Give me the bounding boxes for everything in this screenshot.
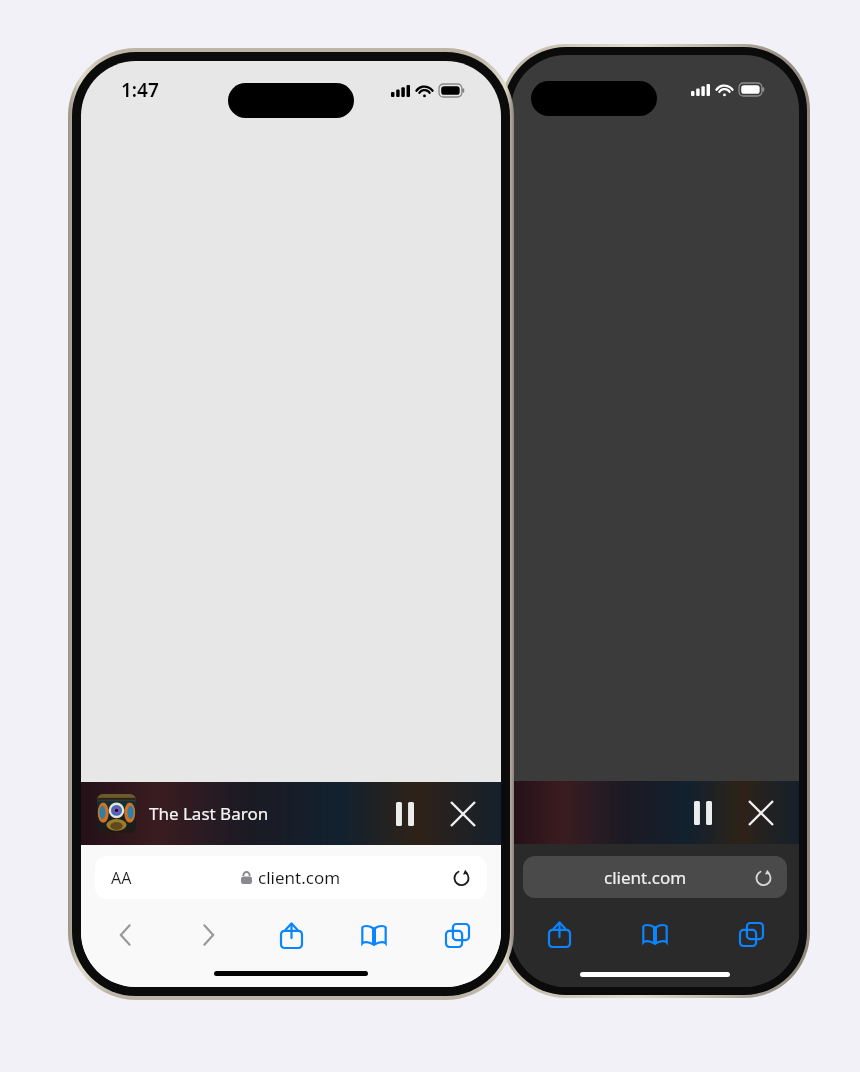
other: Reload: [452, 868, 471, 887]
button[interactable]: Share: [269, 913, 313, 957]
button[interactable]: Tabs: [435, 913, 479, 957]
staticText: client.com: [258, 866, 341, 889]
button[interactable]: Forward: [186, 913, 230, 957]
button[interactable]: Tabs: [729, 912, 773, 956]
button[interactable]: Pause: [383, 792, 427, 836]
other: Reload: [754, 868, 773, 887]
button[interactable]: Close: [739, 791, 783, 835]
staticText: The Last Baron: [149, 802, 269, 825]
button[interactable]: Pause: [681, 791, 725, 835]
staticText: AA: [111, 867, 132, 889]
staticText: 1:47: [121, 77, 159, 103]
staticText: client.com: [604, 866, 687, 889]
button[interactable]: Share: [537, 912, 581, 956]
button[interactable]: Close: [441, 792, 485, 836]
button[interactable]: AA: [95, 856, 487, 899]
button[interactable]: Bookmarks: [352, 913, 396, 957]
button[interactable]: client.com: [523, 856, 787, 898]
button[interactable]: Back: [103, 913, 147, 957]
button[interactable]: Bookmarks: [633, 912, 677, 956]
